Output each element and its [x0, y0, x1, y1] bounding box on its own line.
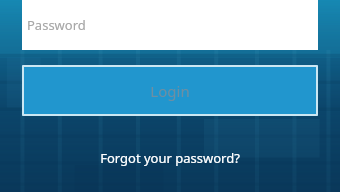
staticText: Login — [150, 81, 190, 101]
staticText: Forgot your password? — [100, 149, 240, 167]
button[interactable]: Forgot your password? — [0, 145, 340, 171]
button[interactable]: Password — [22, 0, 318, 50]
staticText: Password — [27, 16, 86, 34]
button[interactable]: Login — [22, 65, 318, 116]
